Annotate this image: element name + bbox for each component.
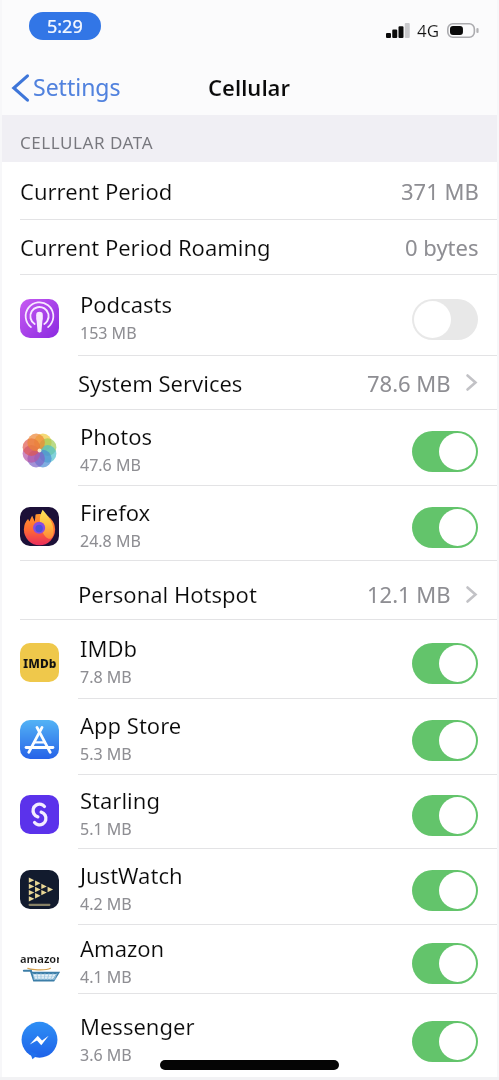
button[interactable]: IMDb	[0, 620, 499, 698]
staticText: Cellular	[208, 72, 291, 102]
button[interactable]: Photos	[0, 410, 499, 485]
button[interactable]: Firefox	[0, 486, 499, 560]
button[interactable]: Podcasts	[0, 275, 499, 355]
staticText: JustWatch	[80, 860, 183, 890]
staticText: 4G	[417, 19, 440, 42]
staticText: Personal Hotspot	[78, 579, 257, 609]
staticText: Current Period	[20, 176, 173, 206]
button[interactable]: Cellular data on	[412, 431, 478, 472]
button[interactable]: Current Period Roaming	[0, 220, 499, 274]
staticText: Settings	[33, 71, 121, 102]
button[interactable]: amazon	[0, 925, 499, 993]
button[interactable]: App Store	[0, 699, 499, 774]
staticText: CELLULAR DATA	[20, 131, 154, 154]
button[interactable]: Recording indicator 5:29	[29, 12, 101, 40]
staticText: Current Period Roaming	[20, 232, 271, 262]
staticText: Photos	[80, 421, 153, 451]
button[interactable]: Cellular data on	[412, 943, 478, 984]
button[interactable]: Cellular data on	[412, 795, 478, 836]
staticText: 5:29	[47, 14, 83, 39]
staticText: IMDb	[80, 633, 138, 663]
staticText: 153 MB	[80, 322, 137, 344]
staticText: Podcasts	[80, 289, 173, 319]
button[interactable]: Cellular data on	[412, 507, 478, 548]
staticText: 4.2 MB	[80, 893, 132, 915]
staticText: 5.3 MB	[80, 743, 132, 765]
staticText: 47.6 MB	[80, 454, 141, 476]
button[interactable]: Current Period	[0, 162, 499, 219]
staticText: System Services	[78, 368, 243, 398]
staticText: amazon	[20, 951, 59, 966]
button[interactable]: Cellular data on	[412, 870, 478, 911]
staticText: 78.6 MB	[367, 368, 451, 398]
button[interactable]: Personal Hotspot	[0, 561, 499, 619]
staticText: 7.8 MB	[80, 666, 132, 688]
staticText: Messenger	[80, 1011, 195, 1041]
staticText: Firefox	[80, 497, 151, 527]
staticText: App Store	[80, 710, 182, 740]
button[interactable]: Cellular data off	[412, 299, 478, 340]
staticText: 3.6 MB	[80, 1044, 132, 1066]
staticText: 12.1 MB	[367, 579, 451, 609]
staticText: 0 bytes	[405, 232, 479, 262]
button[interactable]: System Services	[0, 356, 499, 409]
button[interactable]: Messenger	[0, 994, 499, 1080]
staticText: Starling	[80, 785, 160, 815]
button[interactable]: Settings	[0, 57, 127, 115]
staticText: 371 MB	[401, 176, 479, 206]
staticText: 4.1 MB	[80, 966, 132, 988]
button[interactable]: Cellular data on	[412, 1021, 478, 1062]
staticText: Amazon	[80, 933, 165, 963]
button[interactable]: JustWatch	[0, 849, 499, 924]
staticText: IMDb	[23, 655, 57, 671]
staticText: 24.8 MB	[80, 530, 141, 552]
button[interactable]: Cellular data on	[412, 720, 478, 761]
staticText: 5.1 MB	[80, 818, 132, 840]
button[interactable]: Cellular data on	[412, 643, 478, 684]
button[interactable]: Starling	[0, 775, 499, 848]
